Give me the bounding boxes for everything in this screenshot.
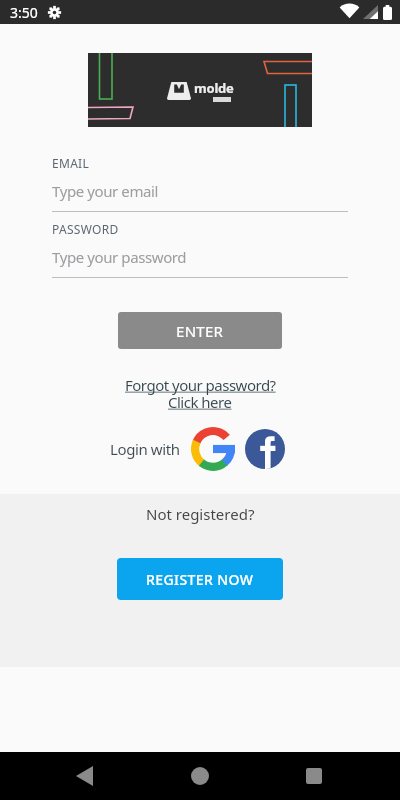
button[interactable]: Type your email [52, 181, 159, 201]
button[interactable] [191, 427, 235, 471]
staticText: Not registered? [146, 504, 255, 524]
staticText: PASSWORD [52, 221, 119, 237]
staticText: ENTER [176, 321, 224, 341]
button[interactable] [191, 767, 209, 785]
staticText: EMAIL [52, 155, 90, 171]
button[interactable]: Forgot your password? [125, 375, 276, 395]
staticText: REGISTER NOW [146, 570, 254, 589]
button[interactable]: REGISTER NOW [117, 558, 283, 600]
button[interactable] [306, 768, 322, 784]
button[interactable]: ENTER [118, 312, 282, 349]
button[interactable]: Type your password [52, 247, 187, 267]
staticText: molde [194, 79, 234, 97]
button[interactable] [76, 766, 93, 786]
button[interactable] [245, 429, 285, 469]
staticText: Login with [110, 439, 180, 459]
button[interactable]: Click here [168, 392, 232, 412]
staticText: 3:50 [10, 3, 38, 22]
